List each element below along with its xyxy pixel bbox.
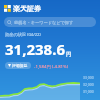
staticText: 楽天証券 [13,4,41,13]
staticText: 銘柄名・キーワードなどで探す [14,20,74,25]
button[interactable]: Home logo [3,3,42,14]
staticText: 32,000 [83,82,99,87]
staticText: -1,584円 (-4.81%) [34,63,69,69]
staticText: 円 [66,51,71,57]
staticText: 資産の状況 (04/22) [5,32,41,38]
staticText: 31,000 [83,89,99,94]
button[interactable]: 評価損益 [5,62,31,69]
staticText: 33,000 [83,75,99,80]
staticText: 評価損益 [12,63,28,68]
button[interactable]: 銘柄名・キーワードなどで探す [4,17,96,27]
staticText: 31,238.6 [5,39,65,59]
